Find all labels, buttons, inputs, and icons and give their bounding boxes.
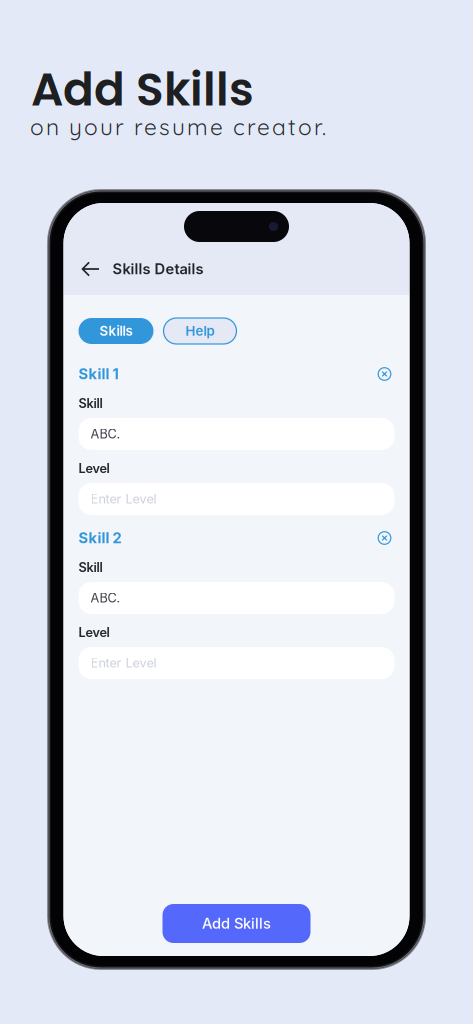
staticText: Skill 2 (78, 529, 121, 547)
staticText: Skills Details (112, 260, 203, 278)
button[interactable]: Add Skills (162, 904, 310, 943)
button[interactable]: Remove Skill 2 (374, 528, 394, 548)
button[interactable]: Back (77, 256, 103, 281)
staticText: Help (185, 323, 214, 339)
staticText: ABC. (90, 590, 120, 606)
button[interactable]: Remove Skill 1 (374, 364, 394, 384)
staticText: Skill (78, 560, 102, 575)
staticText: Enter Level (90, 655, 156, 671)
button[interactable]: Help (163, 318, 236, 344)
button[interactable]: Skills (78, 318, 153, 344)
staticText: Skills (99, 323, 132, 339)
staticText: Enter Level (90, 491, 156, 507)
staticText: ABC. (90, 426, 120, 442)
staticText: Skill 1 (78, 365, 118, 383)
staticText: Level (78, 461, 109, 476)
staticText: on your resume creator. (30, 112, 326, 141)
staticText: Level (78, 625, 109, 640)
staticText: Add Skills (202, 915, 271, 932)
staticText: Add Skills (31, 58, 254, 121)
staticText: Skill (78, 396, 102, 411)
